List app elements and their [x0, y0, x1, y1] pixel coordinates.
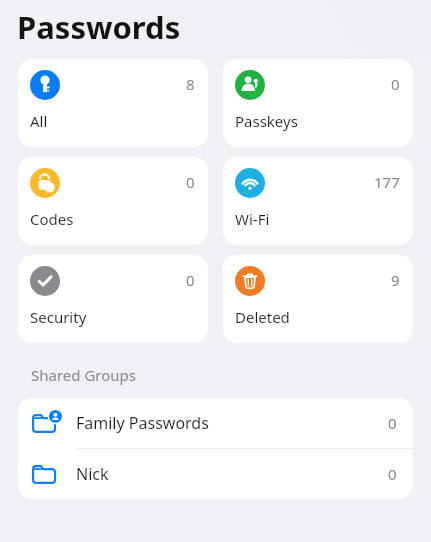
staticText: Wi-Fi [235, 209, 270, 229]
button[interactable]: Security [18, 255, 208, 343]
staticText: 0 [186, 172, 195, 192]
staticText: Passwords [17, 6, 181, 48]
button[interactable]: All [18, 59, 208, 147]
button[interactable]: Codes [18, 157, 208, 245]
staticText: Passkeys [235, 111, 298, 131]
staticText: Codes [30, 209, 74, 229]
staticText: 0 [388, 464, 397, 484]
staticText: 0 [391, 74, 400, 94]
staticText: All [30, 111, 48, 131]
button[interactable]: Wi-Fi [223, 157, 413, 245]
staticText: Security [30, 307, 87, 327]
staticText: 8 [186, 74, 195, 94]
button[interactable]: Nick [18, 449, 413, 499]
staticText: Nick [76, 463, 109, 485]
staticText: 0 [388, 413, 397, 433]
staticText: Deleted [235, 307, 290, 327]
staticText: 0 [186, 270, 195, 290]
staticText: Shared Groups [31, 365, 136, 385]
staticText: Family Passwords [76, 412, 209, 434]
staticText: 177 [374, 172, 400, 192]
button[interactable]: Family Passwords [18, 398, 413, 448]
button[interactable]: Passkeys [223, 59, 413, 147]
button[interactable]: Deleted [223, 255, 413, 343]
staticText: 9 [391, 270, 400, 290]
